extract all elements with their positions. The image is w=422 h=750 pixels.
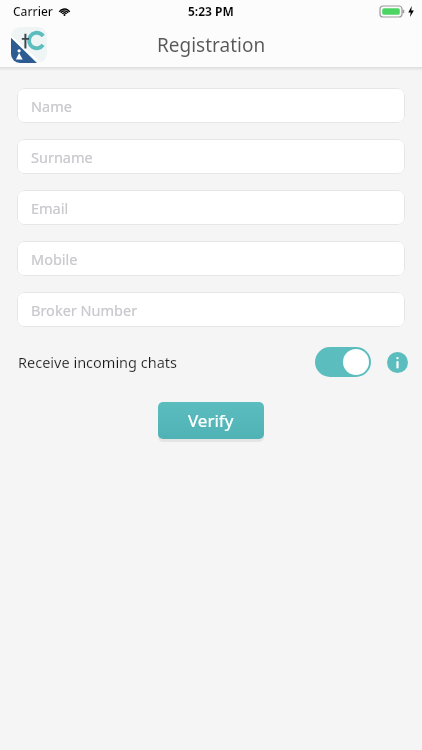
button[interactable]: Verify xyxy=(158,402,264,439)
button[interactable]: Information xyxy=(387,352,408,373)
staticText: Verify xyxy=(188,409,234,432)
button[interactable]: Email xyxy=(17,190,405,225)
staticText: 5:23 PM xyxy=(188,3,234,19)
staticText: Broker Number xyxy=(31,300,138,320)
button[interactable]: Surname xyxy=(17,139,405,174)
button[interactable]: Mobile xyxy=(17,241,405,276)
staticText: Email xyxy=(31,198,69,218)
staticText: Mobile xyxy=(31,249,78,269)
staticText: Carrier xyxy=(13,3,53,19)
staticText: Name xyxy=(31,96,72,116)
staticText: Registration xyxy=(157,32,266,58)
button[interactable]: Receive incoming chats toggle xyxy=(315,347,371,377)
staticText: Surname xyxy=(31,147,93,167)
button[interactable]: Broker Number xyxy=(17,292,405,327)
staticText: Receive incoming chats xyxy=(18,352,178,372)
button[interactable]: App logo xyxy=(11,27,47,63)
button[interactable]: Name xyxy=(17,88,405,123)
